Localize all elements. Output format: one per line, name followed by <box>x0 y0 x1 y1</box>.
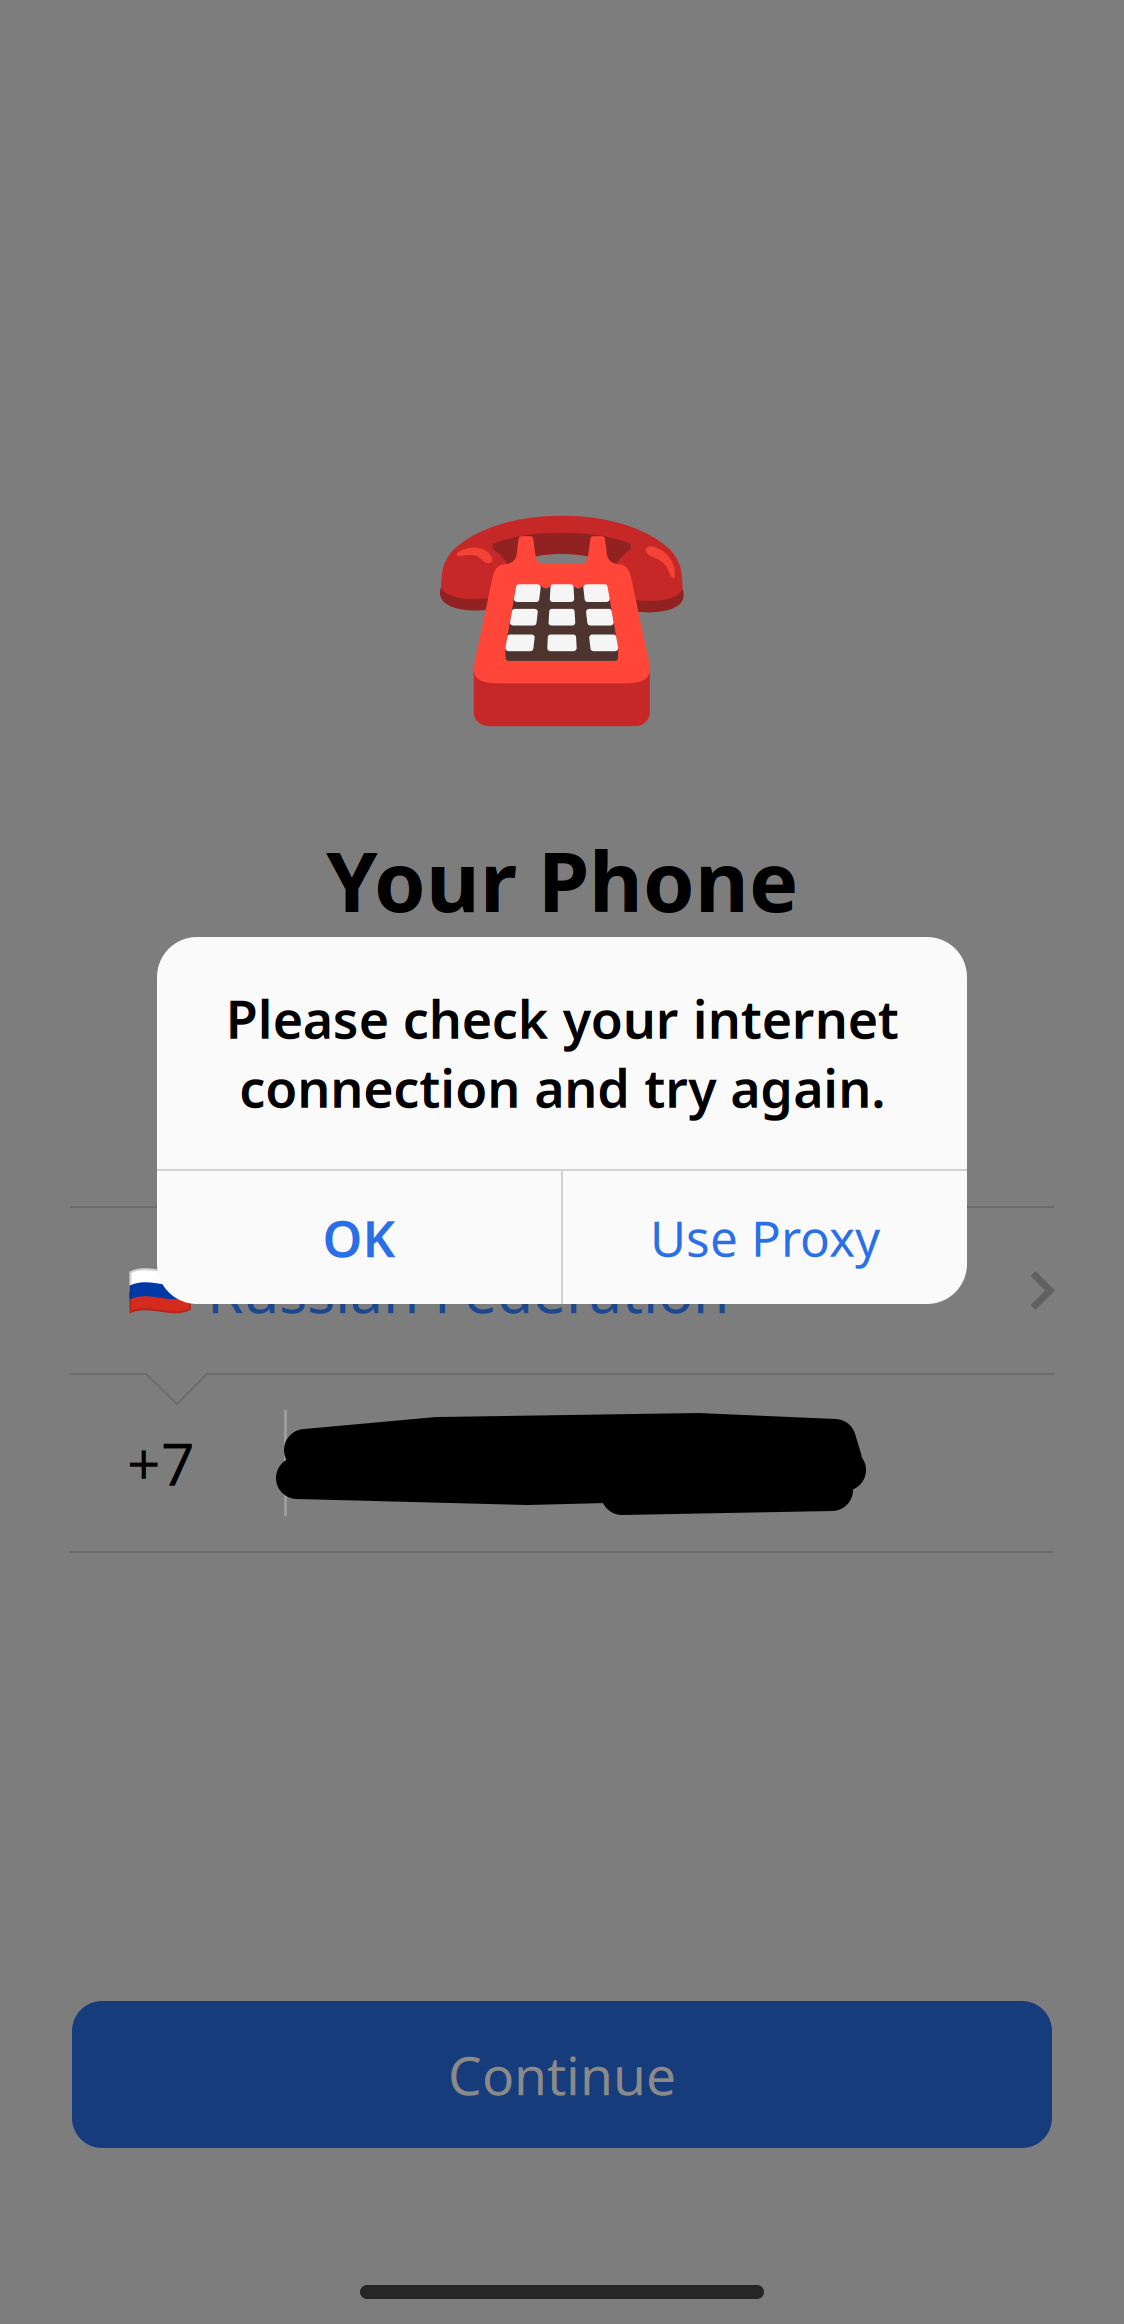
staticText: Your Phone <box>326 825 798 935</box>
staticText: Please check your internet connection an… <box>225 984 898 1122</box>
staticText: OK <box>322 1204 395 1271</box>
staticText: Continue <box>448 2039 676 2110</box>
staticText: +7 <box>127 1424 195 1502</box>
button[interactable]: OK <box>157 1171 561 1304</box>
staticText: 🇷🇺 <box>127 1260 193 1321</box>
staticText: ☎️ <box>429 487 695 731</box>
button[interactable]: Use Proxy <box>563 1171 967 1304</box>
staticText: Use Proxy <box>650 1205 880 1270</box>
button[interactable]: Phone number <box>0 1375 1124 1551</box>
staticText: Russian Federation <box>207 1251 729 1329</box>
button[interactable]: 🇷🇺 <box>0 1208 1124 1373</box>
button[interactable]: Continue <box>72 2001 1052 2148</box>
